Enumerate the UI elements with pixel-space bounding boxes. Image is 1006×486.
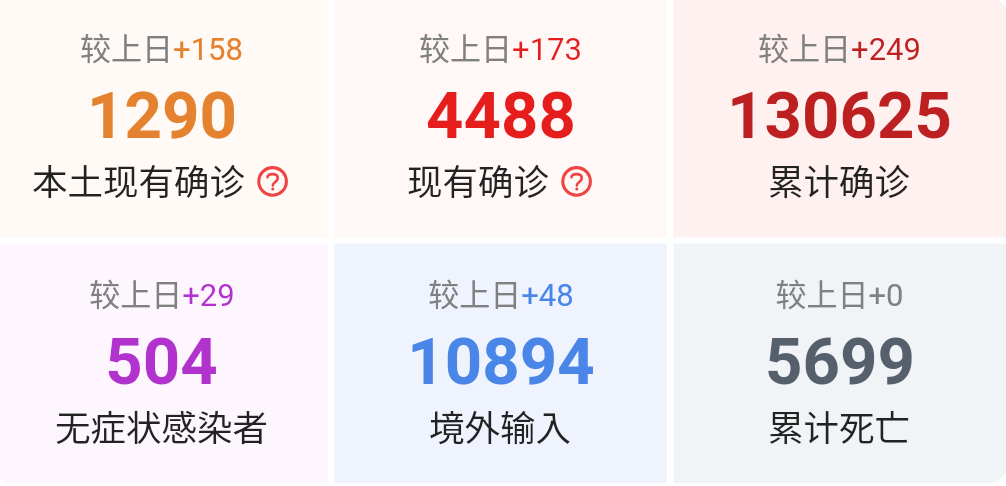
staticText: 4488 [426, 77, 576, 154]
staticText: 1290 [87, 77, 237, 154]
button[interactable]: 较上日+29 [0, 244, 328, 484]
staticText: 较上日+29 [89, 270, 235, 315]
staticText: 5699 [765, 323, 915, 400]
staticText: 现有确诊 [407, 154, 550, 205]
button[interactable]: 较上日+173 [334, 0, 667, 238]
button[interactable]: 较上日+249 [673, 0, 1006, 238]
staticText: 130625 [727, 77, 952, 154]
button[interactable]: 较上日+48 [334, 244, 667, 484]
staticText: 较上日+249 [758, 24, 921, 69]
staticText: 较上日+0 [775, 270, 904, 315]
staticText: 较上日+158 [80, 24, 243, 69]
staticText: 10894 [407, 323, 595, 400]
other: 说明 [561, 163, 595, 197]
staticText: 较上日+173 [419, 24, 582, 69]
staticText: 本土现有确诊 [32, 154, 246, 205]
staticText: 无症状感染者 [55, 400, 269, 451]
staticText: 较上日+48 [428, 270, 574, 315]
other: 说明 [257, 163, 291, 197]
staticText: 累计确诊 [768, 154, 911, 205]
button[interactable]: 较上日+158 [0, 0, 328, 238]
staticText: 504 [105, 323, 218, 400]
button[interactable]: 较上日+0 [673, 244, 1006, 484]
staticText: 境外输入 [429, 400, 572, 451]
staticText: 累计死亡 [768, 400, 911, 451]
